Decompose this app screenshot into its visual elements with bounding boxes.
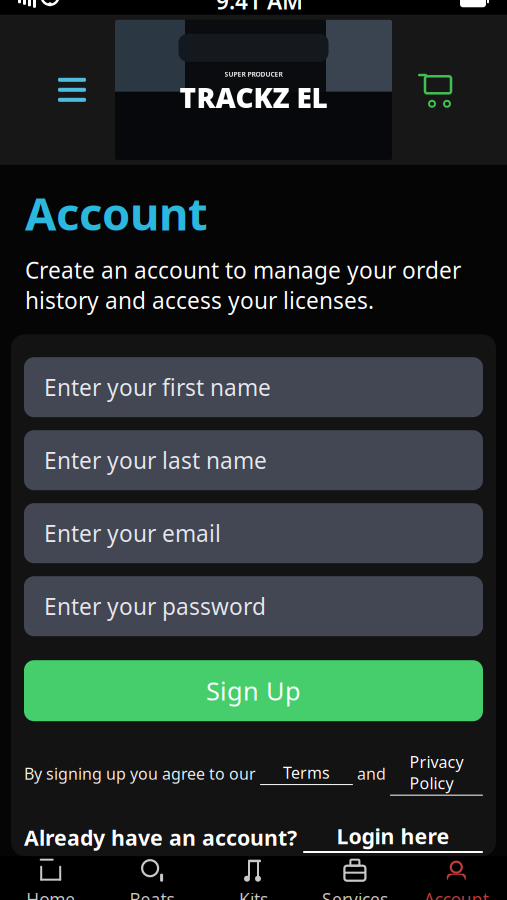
staticText: Enter your first name	[44, 372, 271, 402]
button[interactable]: Cart	[392, 15, 478, 165]
staticText: Terms	[283, 762, 330, 783]
staticText: Services	[322, 888, 388, 900]
button[interactable]: Enter your first name	[24, 357, 483, 417]
staticText: Kits	[239, 888, 268, 900]
button[interactable]: Enter your last name	[24, 430, 483, 490]
staticText: Enter your password	[44, 591, 266, 621]
staticText: Privacy Policy	[409, 751, 463, 794]
staticText: Beats	[130, 888, 175, 900]
staticText: Enter your email	[44, 518, 221, 548]
button[interactable]: By signing up you agree to our	[24, 721, 483, 796]
staticText: 9:41 AM	[216, 0, 303, 16]
staticText: TRACKZ EL	[179, 79, 327, 116]
staticText: Account	[424, 888, 489, 900]
button[interactable]: Already have an account?	[24, 796, 483, 853]
button[interactable]: Home	[0, 856, 101, 900]
staticText: By signing up you agree to our	[24, 763, 260, 784]
staticText: Already have an account?	[24, 823, 303, 851]
button[interactable]: Beats	[101, 856, 203, 900]
button[interactable]: Enter your email	[24, 503, 483, 563]
button[interactable]: Services	[304, 856, 406, 900]
staticText: Create an account to manage your order h…	[25, 255, 461, 315]
staticText: Sign Up	[206, 674, 301, 707]
button[interactable]: Kits	[203, 856, 304, 900]
staticText: Login here	[336, 822, 449, 850]
staticText: Account	[25, 183, 208, 243]
staticText: Enter your last name	[44, 445, 267, 475]
button[interactable]: Enter your password	[24, 576, 483, 636]
button[interactable]: Menu	[29, 15, 115, 165]
button[interactable]: Sign Up	[24, 660, 483, 721]
staticText: Home	[26, 888, 75, 900]
staticText: SUPER PRODUCER	[224, 70, 282, 79]
staticText: and	[353, 763, 390, 784]
button[interactable]: Account	[406, 856, 507, 900]
